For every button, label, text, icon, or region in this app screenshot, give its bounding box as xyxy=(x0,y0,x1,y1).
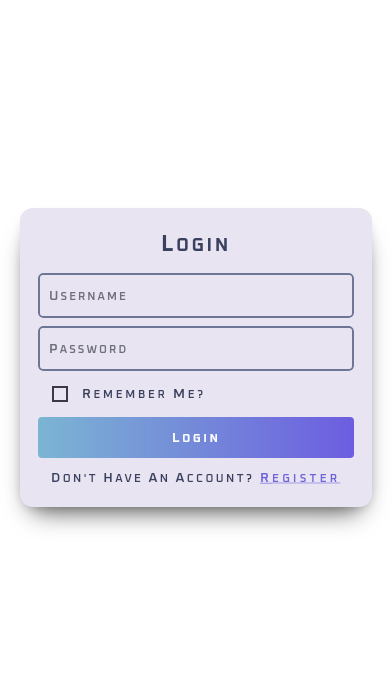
staticText: PASSWORD xyxy=(49,342,129,356)
staticText: REMEMBER ME? xyxy=(82,387,206,401)
staticText: DON'T HAVE AN ACCOUNT? xyxy=(51,471,260,485)
staticText: USERNAME xyxy=(49,289,128,303)
button[interactable]: REMEMBER ME? xyxy=(38,385,206,403)
staticText: LOGIN xyxy=(38,233,354,255)
button[interactable]: Username xyxy=(38,273,354,318)
button[interactable]: LOGIN xyxy=(38,417,354,458)
button[interactable]: REGISTER xyxy=(260,471,341,485)
button[interactable]: Password xyxy=(38,326,354,371)
staticText: LOGIN xyxy=(172,431,221,445)
